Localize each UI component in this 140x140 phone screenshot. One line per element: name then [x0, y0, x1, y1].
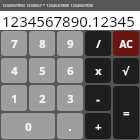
button[interactable]: / [85, 31, 111, 56]
button[interactable]: 4 [1, 58, 27, 83]
button[interactable]: x [85, 58, 111, 83]
staticText: 1234567890.12345678 [2, 11, 140, 30]
button[interactable]: 3 [57, 85, 83, 111]
staticText: 8 [39, 36, 46, 51]
staticText: 0 [25, 119, 32, 134]
staticText: 1 [11, 91, 18, 106]
staticText: 6 [67, 63, 74, 78]
button[interactable]: AC [113, 31, 139, 56]
staticText: 2 [39, 91, 46, 106]
button[interactable]: 0 [1, 113, 55, 139]
staticText: + [95, 119, 102, 134]
staticText: x [95, 63, 102, 78]
staticText: 7 [11, 36, 18, 51]
button[interactable]: 7 [1, 31, 27, 56]
staticText: 1234567890 1234567 * 1234567890 12345678… [2, 3, 94, 8]
button[interactable]: 9 [57, 31, 83, 56]
staticText: / [96, 36, 101, 51]
button[interactable]: - [85, 85, 111, 111]
button[interactable]: + [85, 113, 111, 139]
staticText: 5 [39, 63, 46, 78]
button[interactable]: = [113, 86, 139, 139]
staticText: 4 [11, 63, 18, 78]
button[interactable]: 5 [29, 58, 55, 83]
button[interactable]: 8 [29, 31, 55, 56]
button[interactable]: . [57, 113, 83, 139]
button[interactable]: 1 [1, 85, 27, 111]
button[interactable]: 2 [29, 85, 55, 111]
staticText: √ [122, 65, 130, 78]
staticText: 3 [67, 91, 74, 106]
staticText: . [68, 119, 72, 134]
button[interactable]: √ [113, 58, 139, 84]
staticText: AC [119, 37, 133, 51]
staticText: 9 [67, 36, 74, 51]
staticText: - [96, 91, 100, 106]
staticText: = [123, 105, 130, 120]
button[interactable]: 6 [57, 58, 83, 83]
